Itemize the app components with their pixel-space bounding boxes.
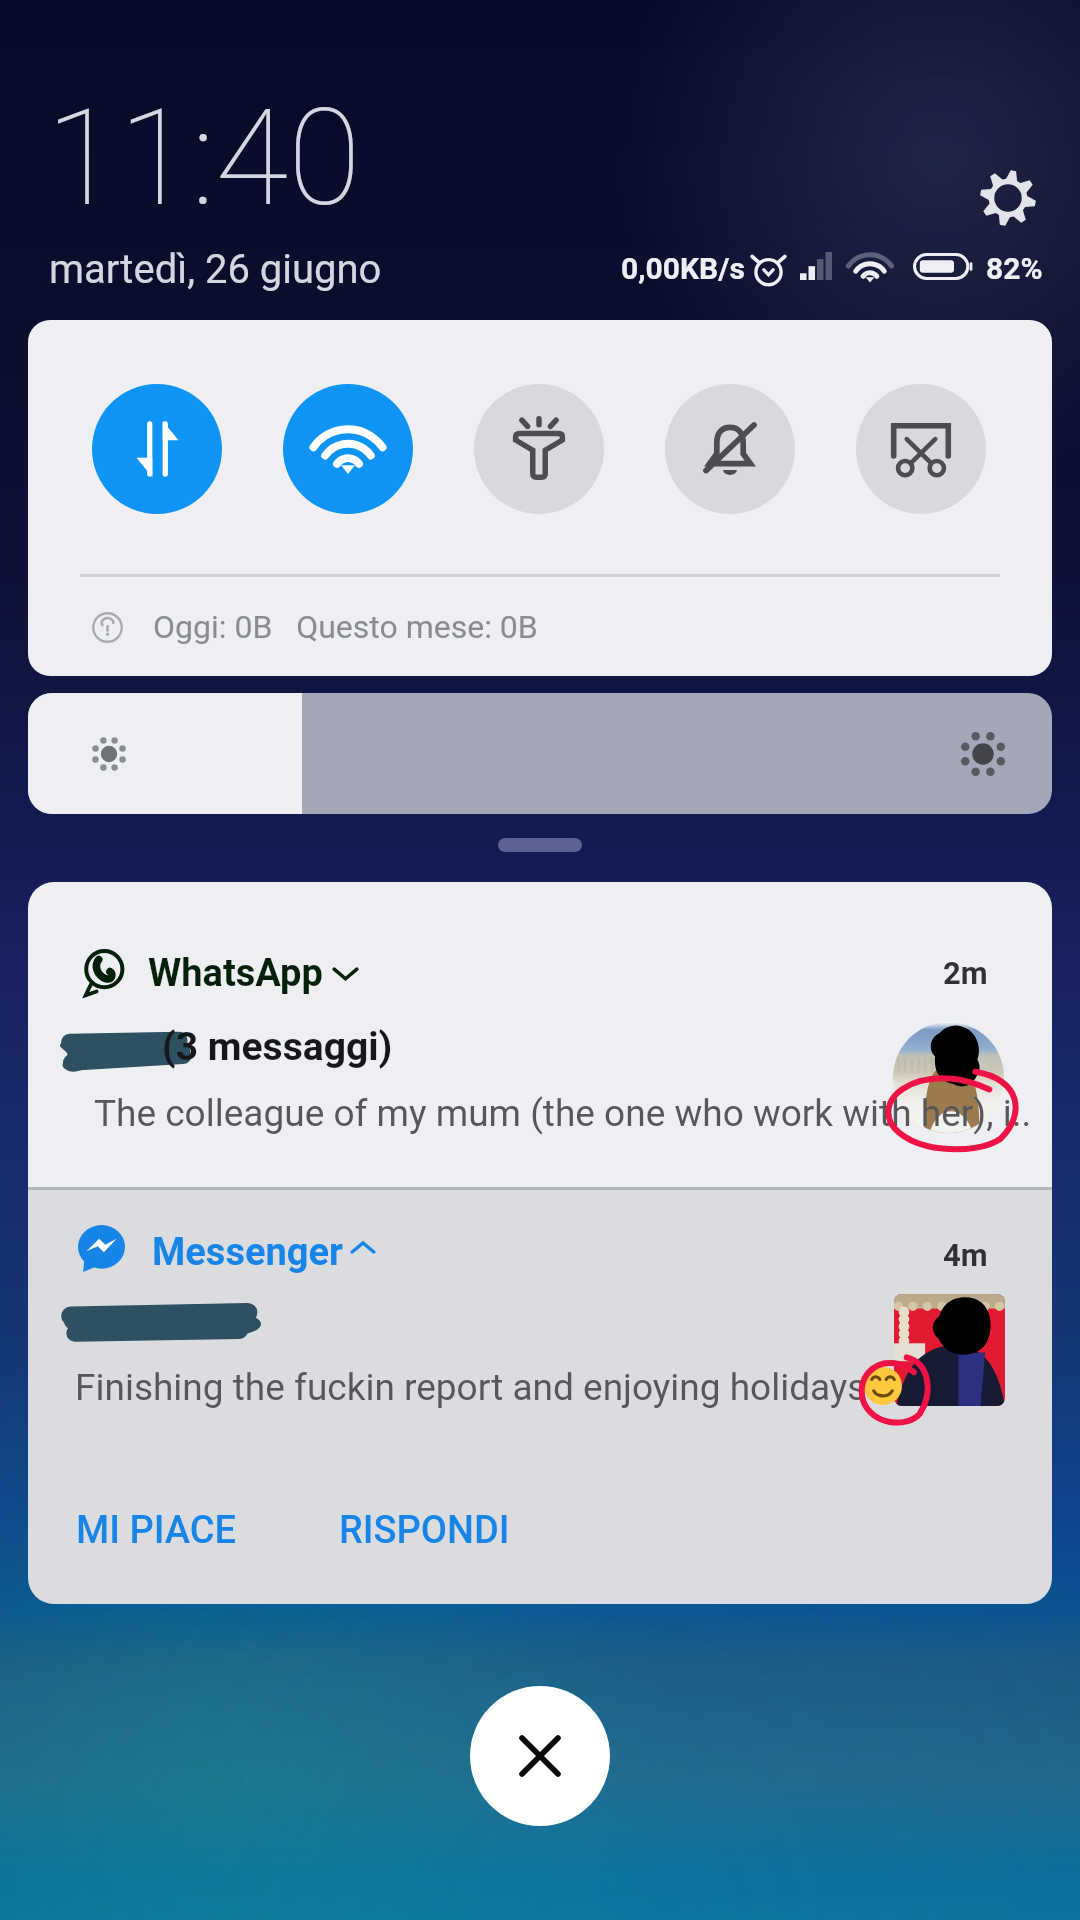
button[interactable]: Wi-Fi bbox=[283, 384, 413, 514]
button[interactable]: Brightness bbox=[28, 693, 1052, 814]
button[interactable]: RISPONDI bbox=[312, 1494, 536, 1566]
staticText: Khalid A. bbox=[78, 1302, 236, 1348]
button[interactable]: Close notifications bbox=[470, 1686, 610, 1826]
staticText: MI PIACE bbox=[76, 1508, 237, 1553]
staticText: Messenger bbox=[152, 1230, 343, 1275]
staticText: martedì, 26 giugno bbox=[49, 246, 382, 293]
staticText: (3 messaggi) bbox=[162, 1024, 393, 1070]
staticText: 11:40 bbox=[46, 81, 361, 237]
staticText: Oggi: 0B Questo mese: 0B bbox=[153, 608, 538, 646]
button[interactable]: Mobile data bbox=[92, 384, 222, 514]
staticText: WhatsApp bbox=[148, 951, 323, 996]
button[interactable]: Torch bbox=[474, 384, 604, 514]
button[interactable]: WhatsApp bbox=[28, 882, 1052, 1187]
staticText: RISPONDI bbox=[339, 1508, 510, 1553]
button[interactable]: MI PIACE bbox=[50, 1494, 262, 1566]
staticText: The colleague of my mum (the one who wor… bbox=[94, 1092, 1032, 1135]
staticText: 82% bbox=[986, 251, 1043, 286]
staticText: 4m bbox=[943, 1237, 988, 1273]
button[interactable]: Settings bbox=[964, 154, 1052, 242]
button[interactable]: Messenger bbox=[28, 1190, 1052, 1604]
staticText: 2m bbox=[943, 955, 988, 991]
staticText: Finishing the fuckin report and enjoying… bbox=[75, 1366, 867, 1409]
button[interactable]: Silent mode bbox=[665, 384, 795, 514]
button[interactable]: Screenshot bbox=[856, 384, 986, 514]
staticText: 0,00KB/s bbox=[621, 251, 745, 286]
